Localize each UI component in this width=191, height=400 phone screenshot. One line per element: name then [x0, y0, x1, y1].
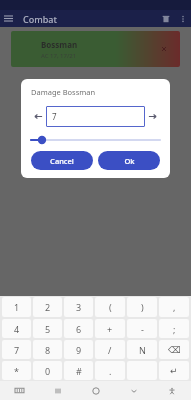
staticText: ; — [173, 323, 176, 335]
button[interactable]: ⌫ — [159, 340, 189, 359]
staticText: AC 17, 17/21 — [41, 52, 77, 60]
button[interactable]: + — [95, 319, 125, 338]
button[interactable]: Hide keyboard — [115, 381, 153, 400]
button[interactable]: 7 — [46, 106, 145, 127]
staticText: ↵ — [170, 366, 178, 376]
button[interactable]: 7 — [2, 340, 31, 359]
button[interactable]: / — [95, 340, 125, 359]
button[interactable]: 0 — [33, 361, 62, 380]
button[interactable]: 6 — [64, 319, 93, 338]
button[interactable]: More options — [174, 10, 191, 27]
staticText: 2 — [45, 301, 51, 313]
staticText: Ok — [124, 156, 135, 166]
button[interactable]: ( — [95, 297, 125, 317]
button[interactable]: ↵ — [159, 361, 189, 380]
button[interactable]: Damage amount slider — [31, 134, 160, 146]
button[interactable]: Remove — [159, 44, 169, 54]
staticText: - — [141, 323, 144, 335]
staticText: Damage Bossman — [31, 87, 96, 97]
staticText: 7 — [52, 111, 57, 122]
staticText: 5 — [45, 323, 51, 335]
staticText: 7 — [14, 344, 20, 356]
button[interactable]: , — [159, 297, 189, 317]
button[interactable]: 9 — [64, 340, 93, 359]
button[interactable]: Delete — [157, 10, 174, 27]
button[interactable]: 1 — [2, 297, 31, 317]
staticText: ⌫ — [168, 345, 181, 355]
staticText: + — [107, 323, 113, 335]
staticText: # — [76, 365, 82, 377]
button[interactable]: 4 — [2, 319, 31, 338]
button[interactable]: * — [2, 361, 31, 380]
staticText: Bossman — [41, 39, 78, 50]
button[interactable]: 2 — [33, 297, 62, 317]
button[interactable]: Home — [77, 381, 115, 400]
staticText: / — [108, 344, 112, 356]
staticText: * — [14, 365, 19, 377]
button[interactable]: 5 — [33, 319, 62, 338]
button[interactable]: Accessibility — [153, 381, 191, 400]
staticText: 1 — [14, 301, 20, 313]
staticText: ( — [109, 301, 112, 313]
button[interactable]: N — [127, 340, 157, 359]
staticText: Combat — [23, 13, 57, 25]
button[interactable]: 8 — [33, 340, 62, 359]
button[interactable]: ) — [127, 297, 157, 317]
button[interactable]: . — [95, 361, 125, 380]
button[interactable]: Cancel — [31, 151, 93, 170]
staticText: N — [139, 344, 146, 356]
button[interactable]: Recents — [39, 381, 77, 400]
button[interactable]: - — [127, 319, 157, 338]
button[interactable]: Increase — [145, 109, 160, 124]
button[interactable]: Bossman — [11, 31, 180, 67]
staticText: Cancel — [50, 156, 74, 166]
staticText: 0 — [45, 365, 51, 377]
button[interactable]: 3 — [64, 297, 93, 317]
staticText: . — [109, 365, 112, 377]
button[interactable]: # — [64, 361, 93, 380]
staticText: 3 — [76, 301, 82, 313]
button[interactable]: Ok — [98, 151, 160, 170]
staticText: 9 — [76, 344, 82, 356]
button[interactable]: Decrease — [31, 109, 46, 124]
staticText: 6 — [76, 323, 82, 335]
staticText: 4 — [14, 323, 20, 335]
button[interactable]: Switch keyboard — [0, 381, 39, 400]
button[interactable]: ; — [159, 319, 189, 338]
staticText: 8 — [45, 344, 51, 356]
staticText: , — [173, 301, 176, 313]
staticText: ) — [141, 301, 144, 313]
button[interactable]: Menu — [0, 10, 17, 27]
